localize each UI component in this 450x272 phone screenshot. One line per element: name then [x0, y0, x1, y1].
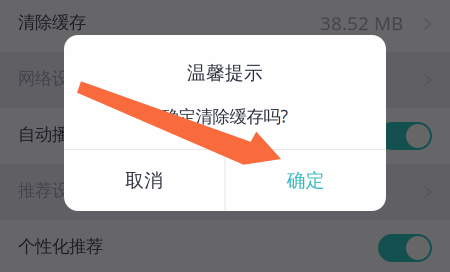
staticText: 确定 [287, 169, 325, 192]
staticText: 推荐设置 [18, 180, 86, 201]
staticText: 网络设置 [18, 68, 86, 89]
button[interactable]: 取消 [64, 150, 224, 211]
button[interactable]: 自动播放 [0, 108, 450, 164]
staticText: 取消 [125, 169, 163, 192]
button[interactable]: 确定 [225, 150, 386, 211]
button[interactable]: 推荐设置 [0, 164, 450, 220]
button[interactable]: 个性化推荐 [0, 220, 450, 272]
staticText: 温馨提示 [187, 61, 263, 84]
staticText: 38.52 MB [320, 11, 403, 35]
staticText: 清除缓存 [18, 12, 86, 33]
button[interactable]: 清除缓存 [0, 0, 450, 52]
staticText: 自动播放 [18, 124, 86, 145]
staticText: 个性化推荐 [18, 236, 103, 257]
staticText: 确定清除缓存吗? [161, 104, 288, 127]
button[interactable]: 网络设置 [0, 52, 450, 108]
